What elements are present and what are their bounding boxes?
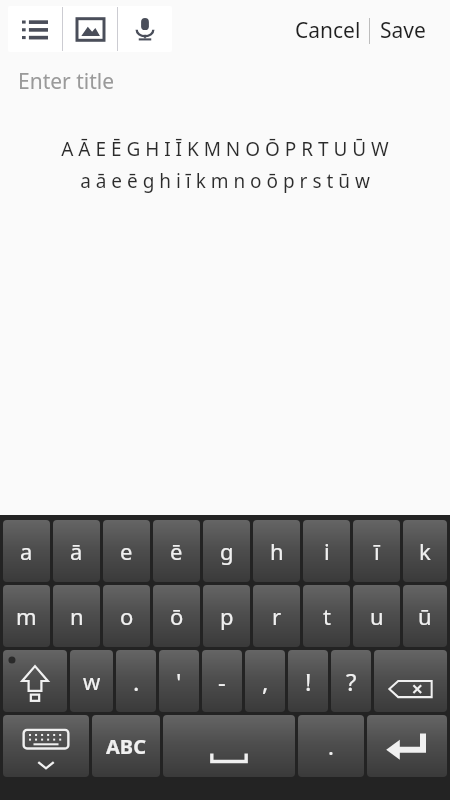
staticText: Cancel xyxy=(295,16,361,45)
staticText: ē xyxy=(170,536,183,566)
button[interactable]: Shift xyxy=(3,650,67,712)
staticText: ā xyxy=(70,536,83,566)
staticText: . xyxy=(328,731,334,761)
button[interactable]: . xyxy=(116,650,156,712)
button[interactable]: m xyxy=(3,585,50,647)
staticText: Enter title xyxy=(18,67,115,96)
button[interactable]: Checklist xyxy=(8,6,62,52)
staticText: ī xyxy=(374,536,380,566)
staticText: h xyxy=(270,536,284,566)
button[interactable]: u xyxy=(353,585,400,647)
staticText: ABC xyxy=(106,733,146,760)
button[interactable]: ? xyxy=(331,650,371,712)
button[interactable]: . xyxy=(298,715,364,777)
button[interactable]: Hide keyboard xyxy=(3,715,89,777)
button[interactable]: ' xyxy=(159,650,199,712)
staticText: Save xyxy=(380,16,426,45)
button[interactable]: ē xyxy=(153,520,200,582)
button[interactable]: Save xyxy=(370,10,436,51)
button[interactable]: ī xyxy=(353,520,400,582)
staticText: i xyxy=(324,536,330,566)
staticText: g xyxy=(220,536,234,566)
button[interactable]: g xyxy=(203,520,250,582)
button[interactable]: ABC xyxy=(92,715,160,777)
staticText: k xyxy=(419,536,431,566)
staticText: ! xyxy=(305,665,312,698)
button[interactable]: a xyxy=(3,520,50,582)
button[interactable]: e xyxy=(103,520,150,582)
staticText: r xyxy=(272,601,282,631)
button[interactable]: t xyxy=(303,585,350,647)
button[interactable]: A Ā E Ē G H I Ī K M N O Ō P R T U Ū W xyxy=(0,104,450,515)
staticText: . xyxy=(133,665,140,698)
staticText: ū xyxy=(418,601,432,631)
button[interactable]: i xyxy=(303,520,350,582)
button[interactable]: Voice input xyxy=(118,6,172,52)
button[interactable]: Enter xyxy=(367,715,447,777)
staticText: ' xyxy=(176,665,182,698)
button[interactable]: o xyxy=(103,585,150,647)
staticText: , xyxy=(262,665,269,698)
button[interactable]: Cancel xyxy=(287,10,369,51)
staticText: e xyxy=(120,536,133,566)
button[interactable]: Space xyxy=(163,715,295,777)
button[interactable]: n xyxy=(53,585,100,647)
button[interactable]: - xyxy=(202,650,242,712)
staticText: w xyxy=(83,666,101,696)
staticText: ? xyxy=(346,665,357,698)
button[interactable]: k xyxy=(403,520,447,582)
button[interactable]: r xyxy=(253,585,300,647)
staticText: u xyxy=(370,601,384,631)
button[interactable]: ō xyxy=(153,585,200,647)
staticText: m xyxy=(16,601,37,631)
button[interactable]: Delete xyxy=(374,650,447,712)
button[interactable]: ā xyxy=(53,520,100,582)
button[interactable]: Enter title xyxy=(0,58,450,104)
staticText: a xyxy=(20,536,33,566)
staticText: a ā e ē g h i ī k m n o ō p r s t ū w xyxy=(80,168,370,194)
button[interactable]: , xyxy=(245,650,285,712)
staticText: A Ā E Ē G H I Ī K M N O Ō P R T U Ū W xyxy=(61,136,389,162)
staticText: n xyxy=(70,601,84,631)
staticText: t xyxy=(323,601,331,631)
staticText: ō xyxy=(170,601,184,631)
staticText: - xyxy=(218,665,226,698)
button[interactable]: Insert image xyxy=(63,6,117,52)
button[interactable]: h xyxy=(253,520,300,582)
button[interactable]: p xyxy=(203,585,250,647)
button[interactable]: ! xyxy=(288,650,328,712)
button[interactable]: ū xyxy=(403,585,447,647)
staticText: o xyxy=(120,601,134,631)
staticText: p xyxy=(220,601,234,631)
button[interactable]: w xyxy=(70,650,113,712)
